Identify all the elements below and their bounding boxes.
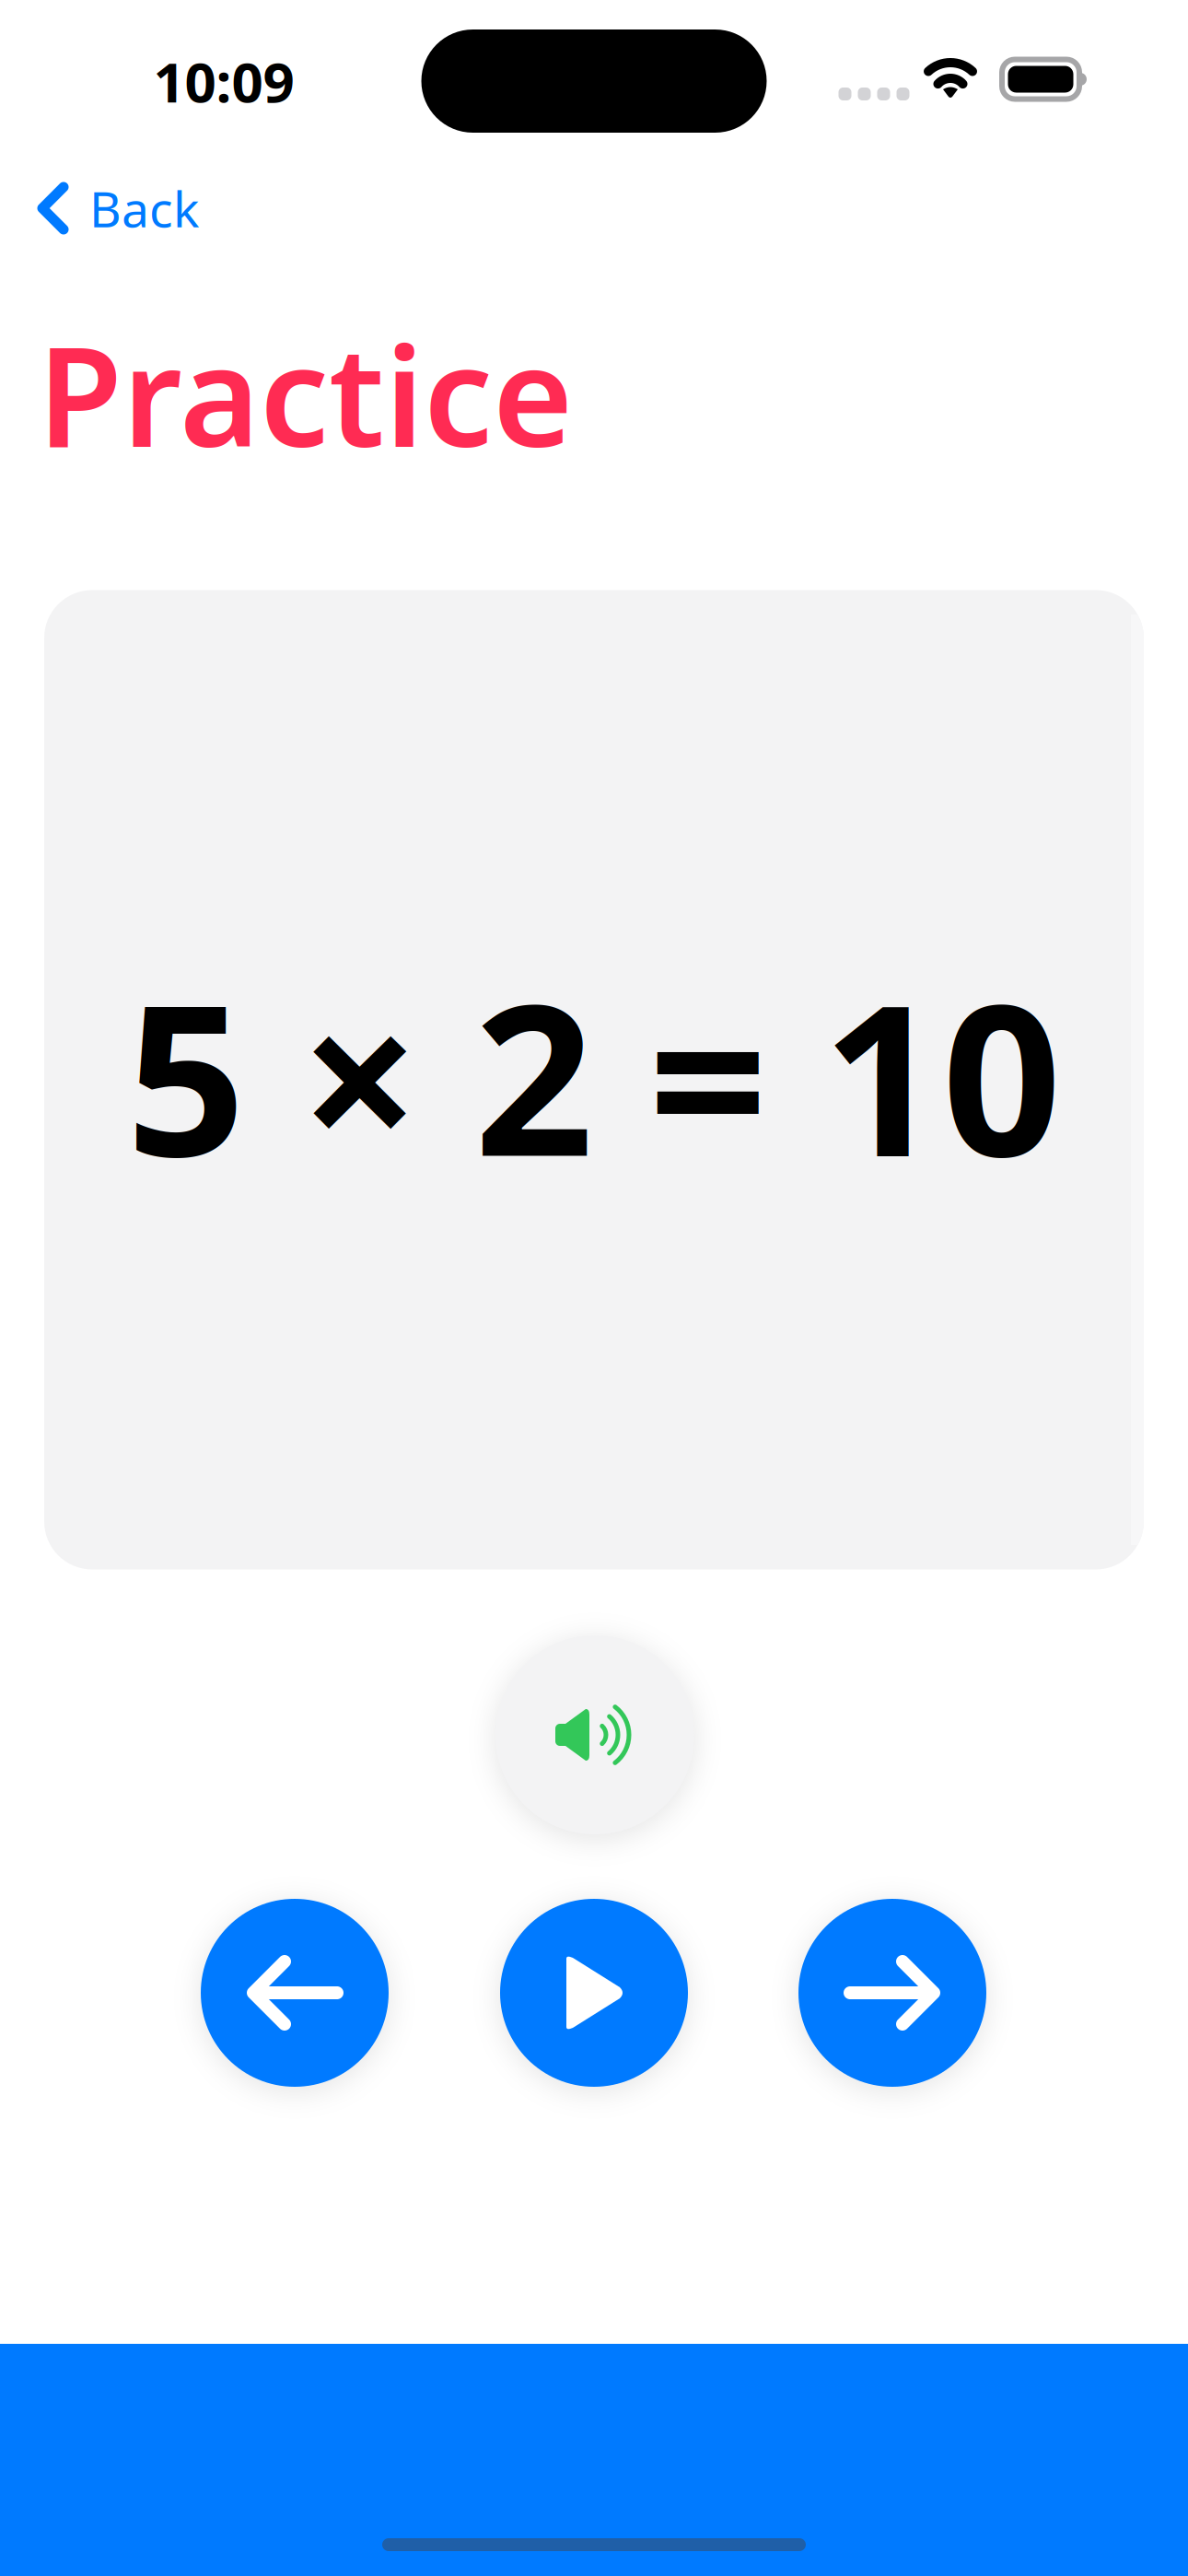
staticText: Practice [38, 302, 573, 485]
button[interactable]: Play [500, 1899, 688, 2087]
button[interactable]: Next problem [798, 1899, 986, 2087]
button[interactable]: Hear the problem [495, 1635, 694, 1834]
staticText: 5 × 2 = 10 [126, 937, 1062, 1214]
staticText: Back [89, 176, 199, 241]
staticText: 10:09 [153, 44, 294, 118]
button[interactable]: Back [0, 160, 304, 256]
button[interactable]: Previous problem [201, 1899, 389, 2087]
